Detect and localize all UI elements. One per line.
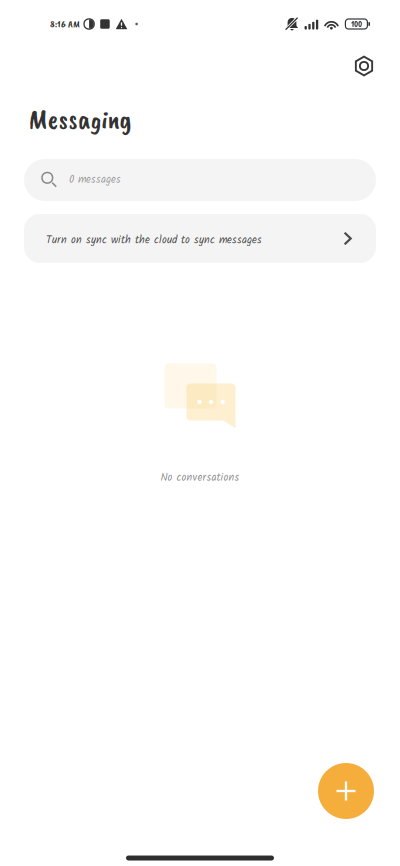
staticText: Turn on sync with the cloud to sync mess… [46,232,262,249]
staticText: 8:16 AM [50,18,80,30]
button[interactable]: New message [318,763,374,819]
button[interactable]: Turn on sync with the cloud to sync mess… [24,214,376,263]
staticText: No conversations [160,469,239,486]
button[interactable]: 0 messages [24,159,376,201]
staticText: Messaging [28,101,132,137]
staticText: 0 messages [69,171,121,188]
staticText: 100 [351,18,362,30]
button[interactable]: Settings [342,44,385,87]
